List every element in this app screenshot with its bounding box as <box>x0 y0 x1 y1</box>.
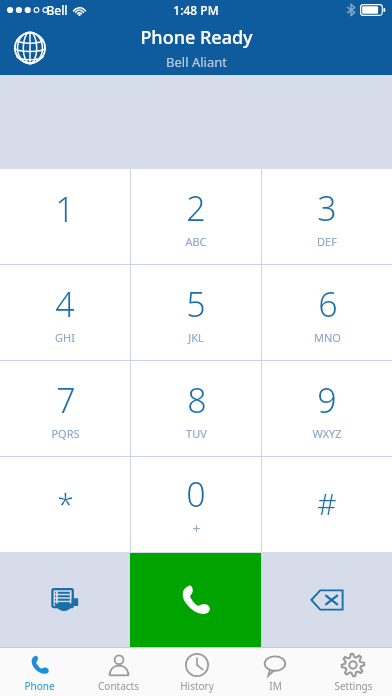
staticText: 3 <box>317 185 337 231</box>
staticText: 5 <box>186 281 206 327</box>
staticText: GHI <box>55 330 75 345</box>
staticText: Phone Ready <box>140 25 253 50</box>
staticText: DEF <box>317 234 337 249</box>
button[interactable]: Network status <box>10 28 50 68</box>
button[interactable]: 6 <box>262 265 392 360</box>
button[interactable]: Call <box>130 553 261 647</box>
staticText: 1:48 PM <box>173 2 219 18</box>
staticText: WXYZ <box>312 426 342 441</box>
staticText: TUV <box>186 426 207 441</box>
staticText: 6 <box>318 281 338 327</box>
button[interactable]: Contacts <box>79 648 158 696</box>
staticText: Bell <box>46 2 68 18</box>
button[interactable]: Backspace <box>261 552 392 647</box>
staticText: + <box>192 519 201 538</box>
staticText: 7 <box>56 377 76 423</box>
staticText: JKL <box>188 330 204 345</box>
button[interactable]: Settings <box>314 648 392 696</box>
staticText: MNO <box>314 330 341 345</box>
button[interactable]: 3 <box>262 169 392 264</box>
staticText: * <box>57 483 74 524</box>
staticText: History <box>180 679 214 693</box>
button[interactable]: IM <box>236 648 314 696</box>
staticText: Bell Aliant <box>166 53 227 71</box>
button[interactable]: 5 <box>131 265 261 360</box>
staticText: # <box>317 483 337 524</box>
button[interactable]: 1 <box>0 169 130 264</box>
button[interactable]: 4 <box>0 265 130 360</box>
staticText: Phone <box>24 679 55 693</box>
staticText: PQRS <box>51 426 80 441</box>
staticText: 9 <box>317 377 337 423</box>
button[interactable]: 8 <box>131 361 261 456</box>
staticText: ABC <box>185 234 207 249</box>
staticText: 4 <box>55 281 75 327</box>
button[interactable]: * <box>0 457 130 552</box>
staticText: Settings <box>334 679 373 693</box>
button[interactable]: 9 <box>262 361 392 456</box>
button[interactable]: 2 <box>131 169 261 264</box>
staticText: IM <box>269 679 282 693</box>
button[interactable]: Voicemail <box>0 552 130 647</box>
staticText: 2 <box>186 185 206 231</box>
button[interactable]: # <box>262 457 392 552</box>
button[interactable]: 0 <box>131 457 261 552</box>
staticText: 0 <box>186 471 206 517</box>
button[interactable]: History <box>158 648 236 696</box>
staticText: 1 <box>55 186 75 232</box>
staticText: Contacts <box>98 679 139 693</box>
button[interactable]: 7 <box>0 361 130 456</box>
staticText: 8 <box>187 377 207 423</box>
button[interactable]: Phone <box>0 648 79 696</box>
